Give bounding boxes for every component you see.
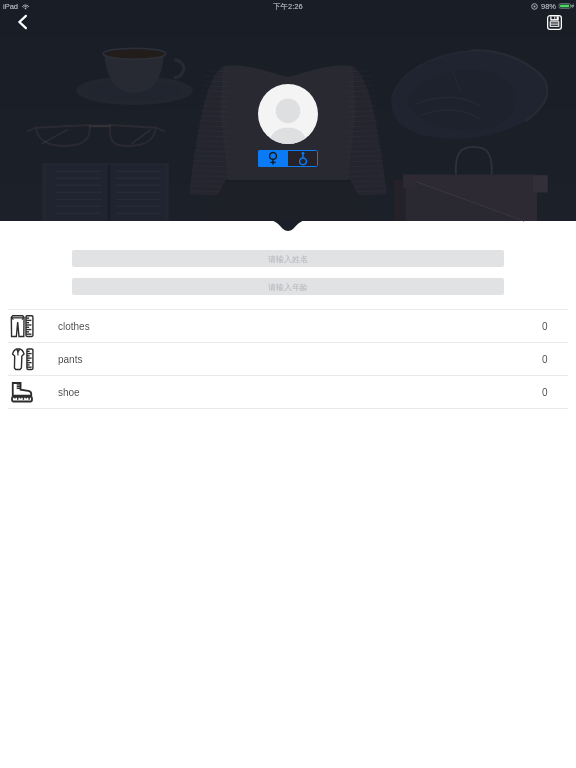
- staticText: 下午2:26: [273, 2, 303, 11]
- staticText: shoe: [58, 387, 80, 398]
- button[interactable]: Male: [288, 150, 318, 167]
- staticText: 0: [542, 387, 548, 398]
- button[interactable]: pants: [0, 343, 576, 375]
- button[interactable]: clothes: [0, 310, 576, 342]
- staticText: iPad: [3, 2, 19, 10]
- button[interactable]: Profile photo: [258, 84, 318, 144]
- button[interactable]: shoe: [0, 376, 576, 408]
- button[interactable]: 请输入姓名: [72, 250, 504, 267]
- button[interactable]: Save: [538, 6, 570, 38]
- staticText: 0: [542, 321, 548, 332]
- button[interactable]: Back: [6, 6, 38, 38]
- staticText: 请输入姓名: [268, 254, 308, 264]
- staticText: 98%: [541, 2, 557, 10]
- button[interactable]: Female: [258, 150, 288, 167]
- staticText: 0: [542, 354, 548, 365]
- button[interactable]: 请输入年龄: [72, 278, 504, 295]
- staticText: clothes: [58, 321, 90, 332]
- staticText: 请输入年龄: [268, 282, 308, 292]
- staticText: pants: [58, 354, 83, 365]
